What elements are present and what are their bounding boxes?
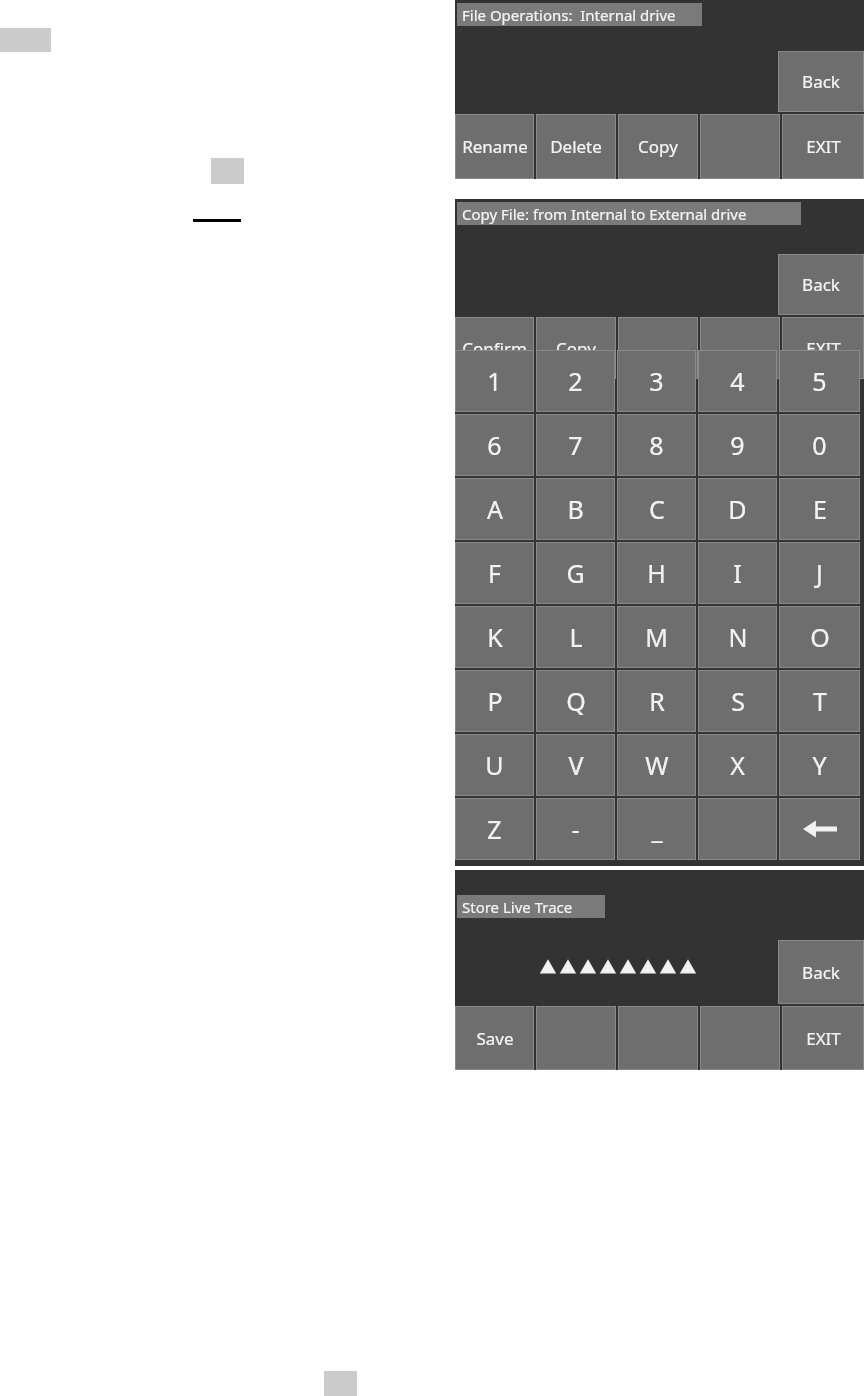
button[interactable]: S <box>699 671 776 731</box>
button[interactable]: 2 <box>537 351 614 411</box>
staticText: 1 <box>487 364 502 398</box>
button[interactable]: R <box>618 671 695 731</box>
staticText: J <box>816 556 823 590</box>
button[interactable] <box>701 318 779 378</box>
button[interactable]: V <box>537 735 614 795</box>
button[interactable]: Confirm <box>456 318 533 378</box>
button[interactable]: I <box>699 543 776 603</box>
button[interactable]: J <box>780 543 859 603</box>
staticText: L <box>569 620 583 654</box>
button[interactable]: E <box>780 479 859 539</box>
button[interactable]: Copy <box>619 115 697 178</box>
button[interactable]: Back <box>779 941 863 1003</box>
button[interactable]: 0 <box>780 415 859 475</box>
button[interactable]: EXIT <box>783 318 863 378</box>
staticText: O <box>810 620 830 654</box>
staticText: 7 <box>568 428 583 462</box>
staticText: E <box>813 492 827 526</box>
button[interactable]: 9 <box>699 415 776 475</box>
staticText: EXIT <box>806 1027 841 1050</box>
button[interactable]: Back <box>779 255 863 314</box>
staticText: 3 <box>649 364 664 398</box>
staticText: M <box>645 620 668 654</box>
button[interactable]: Rename <box>456 115 533 178</box>
button[interactable]: Back <box>779 52 863 111</box>
button[interactable] <box>619 318 697 378</box>
button[interactable]: 3 <box>618 351 695 411</box>
staticText: Back <box>802 273 840 296</box>
staticText: H <box>647 556 666 590</box>
button[interactable]: Z <box>456 799 533 859</box>
staticText: V <box>568 748 584 782</box>
button[interactable]: Backspace <box>780 799 859 859</box>
staticText: S <box>731 684 745 718</box>
staticText: G <box>566 556 585 590</box>
button[interactable]: G <box>537 543 614 603</box>
button[interactable]: EXIT <box>783 115 863 178</box>
button[interactable]: 6 <box>456 415 533 475</box>
staticText: D <box>728 492 747 526</box>
button[interactable]: Y <box>780 735 859 795</box>
button[interactable]: L <box>537 607 614 667</box>
staticText: 8 <box>649 428 664 462</box>
button[interactable]: C <box>618 479 695 539</box>
button[interactable]: - <box>537 799 614 859</box>
staticText: Delete <box>550 135 602 158</box>
staticText: Back <box>802 961 840 984</box>
staticText: Save <box>476 1027 514 1050</box>
button[interactable]: Q <box>537 671 614 731</box>
staticText: R <box>649 684 665 718</box>
staticText: Confirm <box>462 337 527 360</box>
button[interactable]: 5 <box>780 351 859 411</box>
staticText: U <box>485 748 504 782</box>
button[interactable]: F <box>456 543 533 603</box>
staticText: Copy <box>638 135 678 158</box>
button[interactable]: W <box>618 735 695 795</box>
button[interactable]: X <box>699 735 776 795</box>
button[interactable]: 4 <box>699 351 776 411</box>
button[interactable]: Save <box>456 1007 533 1069</box>
staticText: Back <box>802 70 840 93</box>
button[interactable]: 8 <box>618 415 695 475</box>
staticText: EXIT <box>806 337 841 360</box>
staticText: A <box>487 492 503 526</box>
staticText: Q <box>566 684 586 718</box>
staticText: Z <box>487 812 502 846</box>
staticText: - <box>571 812 580 846</box>
button[interactable]: T <box>780 671 859 731</box>
staticText: X <box>730 748 745 782</box>
button[interactable]: K <box>456 607 533 667</box>
button[interactable]: P <box>456 671 533 731</box>
staticText: EXIT <box>806 135 841 158</box>
staticText: Copy <box>556 337 596 360</box>
staticText: 9 <box>730 428 745 462</box>
button[interactable]: M <box>618 607 695 667</box>
staticText: C <box>649 492 665 526</box>
button[interactable]: 1 <box>456 351 533 411</box>
button[interactable]: H <box>618 543 695 603</box>
staticText: Copy File: from Internal to External dri… <box>462 204 747 224</box>
button[interactable]: B <box>537 479 614 539</box>
staticText: N <box>728 620 748 654</box>
button[interactable]: 7 <box>537 415 614 475</box>
button[interactable]: A <box>456 479 533 539</box>
staticText: T <box>813 684 827 718</box>
button[interactable]: U <box>456 735 533 795</box>
button[interactable]: D <box>699 479 776 539</box>
button[interactable]: Delete <box>537 115 615 178</box>
button[interactable]: O <box>780 607 859 667</box>
staticText: K <box>487 620 503 654</box>
button[interactable]: EXIT <box>783 1007 863 1069</box>
staticText: Rename <box>462 135 528 158</box>
staticText: P <box>487 684 503 718</box>
button[interactable]: Copy <box>537 318 615 378</box>
staticText: B <box>567 492 584 526</box>
button[interactable]: _ <box>618 799 695 859</box>
staticText: 4 <box>730 364 745 398</box>
button[interactable]: N <box>699 607 776 667</box>
